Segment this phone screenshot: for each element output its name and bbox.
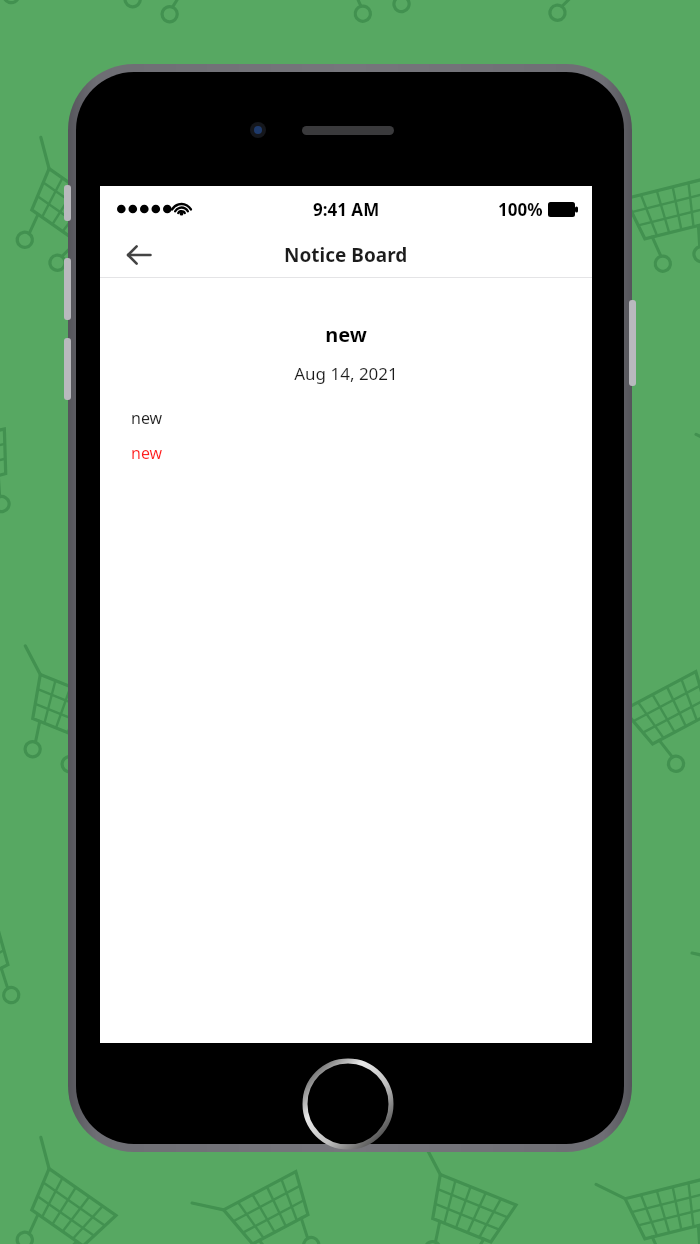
staticText: new [119, 321, 573, 348]
button[interactable]: new [119, 307, 573, 482]
staticText: new [131, 442, 163, 464]
staticText: 100% [498, 198, 543, 221]
staticText: Notice Board [284, 242, 408, 268]
button[interactable]: Back [116, 232, 162, 277]
staticText: Aug 14, 2021 [119, 362, 573, 385]
staticText: 9:41 AM [313, 198, 380, 221]
staticText: new [131, 407, 163, 429]
